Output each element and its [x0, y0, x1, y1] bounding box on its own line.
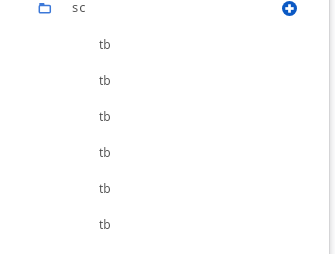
staticText: sc: [72, 0, 87, 14]
staticText: tb: [99, 36, 111, 52]
staticText: tb: [99, 144, 111, 160]
button[interactable]: tb: [0, 108, 335, 144]
button[interactable]: tb: [0, 216, 335, 252]
button[interactable]: sc: [36, 0, 87, 16]
staticText: tb: [99, 180, 111, 196]
staticText: tb: [99, 72, 111, 88]
button[interactable]: Add: [282, 1, 297, 16]
button[interactable]: tb: [0, 180, 335, 216]
button[interactable]: tb: [0, 36, 335, 72]
staticText: tb: [99, 108, 111, 124]
button[interactable]: tb: [0, 72, 335, 108]
staticText: tb: [99, 216, 111, 232]
button[interactable]: tb: [0, 144, 335, 180]
